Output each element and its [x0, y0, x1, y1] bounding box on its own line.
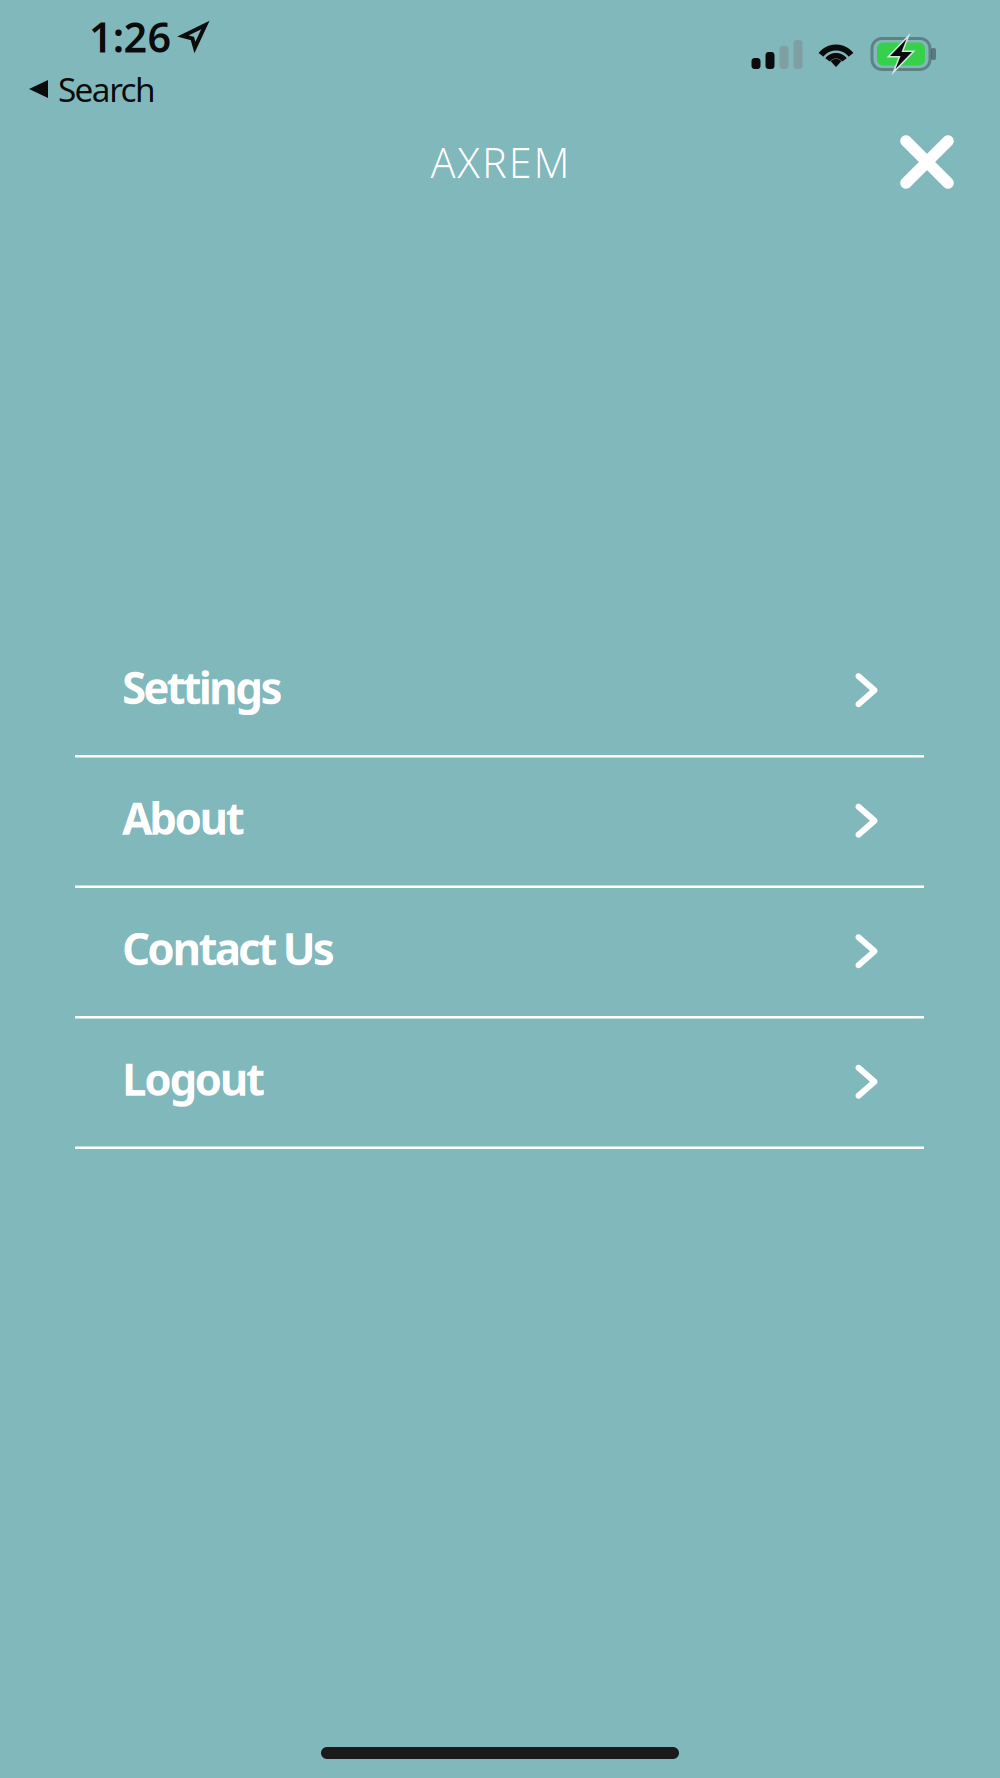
staticText: Logout	[122, 1049, 265, 1108]
staticText: Contact Us	[122, 919, 335, 977]
button[interactable]: Search	[0, 62, 170, 109]
button[interactable]: Close	[879, 111, 975, 213]
staticText: 1:26	[89, 9, 171, 64]
button[interactable]: Contact Us	[0, 888, 1000, 1016]
staticText: AXREM	[430, 135, 570, 189]
button[interactable]: Settings	[0, 627, 1000, 755]
staticText: Settings	[122, 658, 282, 716]
button[interactable]: About	[0, 757, 1000, 885]
staticText: Search	[58, 67, 156, 111]
staticText: About	[122, 788, 245, 847]
button[interactable]: Logout	[0, 1018, 1000, 1146]
